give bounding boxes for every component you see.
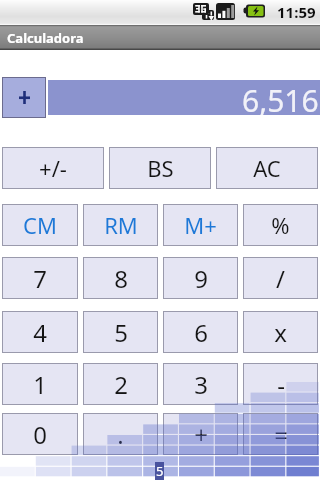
button[interactable]: % [243,204,318,246]
button[interactable]: 8 [83,257,158,299]
button[interactable]: x [243,311,318,353]
button[interactable]: AC [216,147,318,189]
staticText: CM [23,210,57,240]
button[interactable]: 6 [163,311,238,353]
staticText: . [117,418,124,451]
button[interactable]: 3 [163,363,238,405]
button[interactable]: 6,516 [48,80,320,115]
button[interactable]: / [243,257,318,299]
button[interactable]: 9 [163,257,238,299]
button[interactable]: M+ [163,204,238,246]
staticText: AC [253,153,281,183]
button[interactable]: RM [83,204,158,246]
button[interactable]: CM [2,204,78,246]
button[interactable]: 5 [83,311,158,353]
staticText: 2 [114,368,128,401]
staticText: + [194,418,208,451]
staticText: M+ [184,210,217,240]
staticText: 4 [33,316,47,349]
staticText: RM [104,210,138,240]
button[interactable]: +/- [2,147,104,189]
staticText: % [271,210,290,240]
button[interactable]: + [163,413,238,455]
button[interactable]: 0 [2,413,78,455]
staticText: / [276,262,285,295]
button[interactable]: 4 [2,311,78,353]
staticText: 5 [114,316,128,349]
staticText: 3 [194,368,208,401]
staticText: 6 [194,316,208,349]
staticText: - [277,368,285,401]
button[interactable]: 7 [2,257,78,299]
staticText: x [274,316,287,349]
staticText: 6,516 [242,80,319,115]
button[interactable]: 1 [2,363,78,405]
staticText: 7 [33,262,47,295]
button[interactable]: 2 [83,363,158,405]
button[interactable]: Value 5 [155,462,164,480]
button[interactable]: - [243,363,318,405]
staticText: 5 [156,462,164,480]
staticText: BS [147,153,174,183]
staticText: Calculadora [7,29,84,47]
staticText: 1 [33,368,47,401]
staticText: +/- [39,153,67,183]
staticText: 8 [114,262,128,295]
staticText: 11:59 [277,2,316,22]
staticText: 9 [194,262,208,295]
staticText: 0 [33,418,47,451]
staticText: = [274,418,288,451]
button[interactable]: . [83,413,158,455]
button[interactable]: Add [2,77,46,118]
button[interactable]: = [243,413,318,455]
button[interactable]: BS [109,147,211,189]
